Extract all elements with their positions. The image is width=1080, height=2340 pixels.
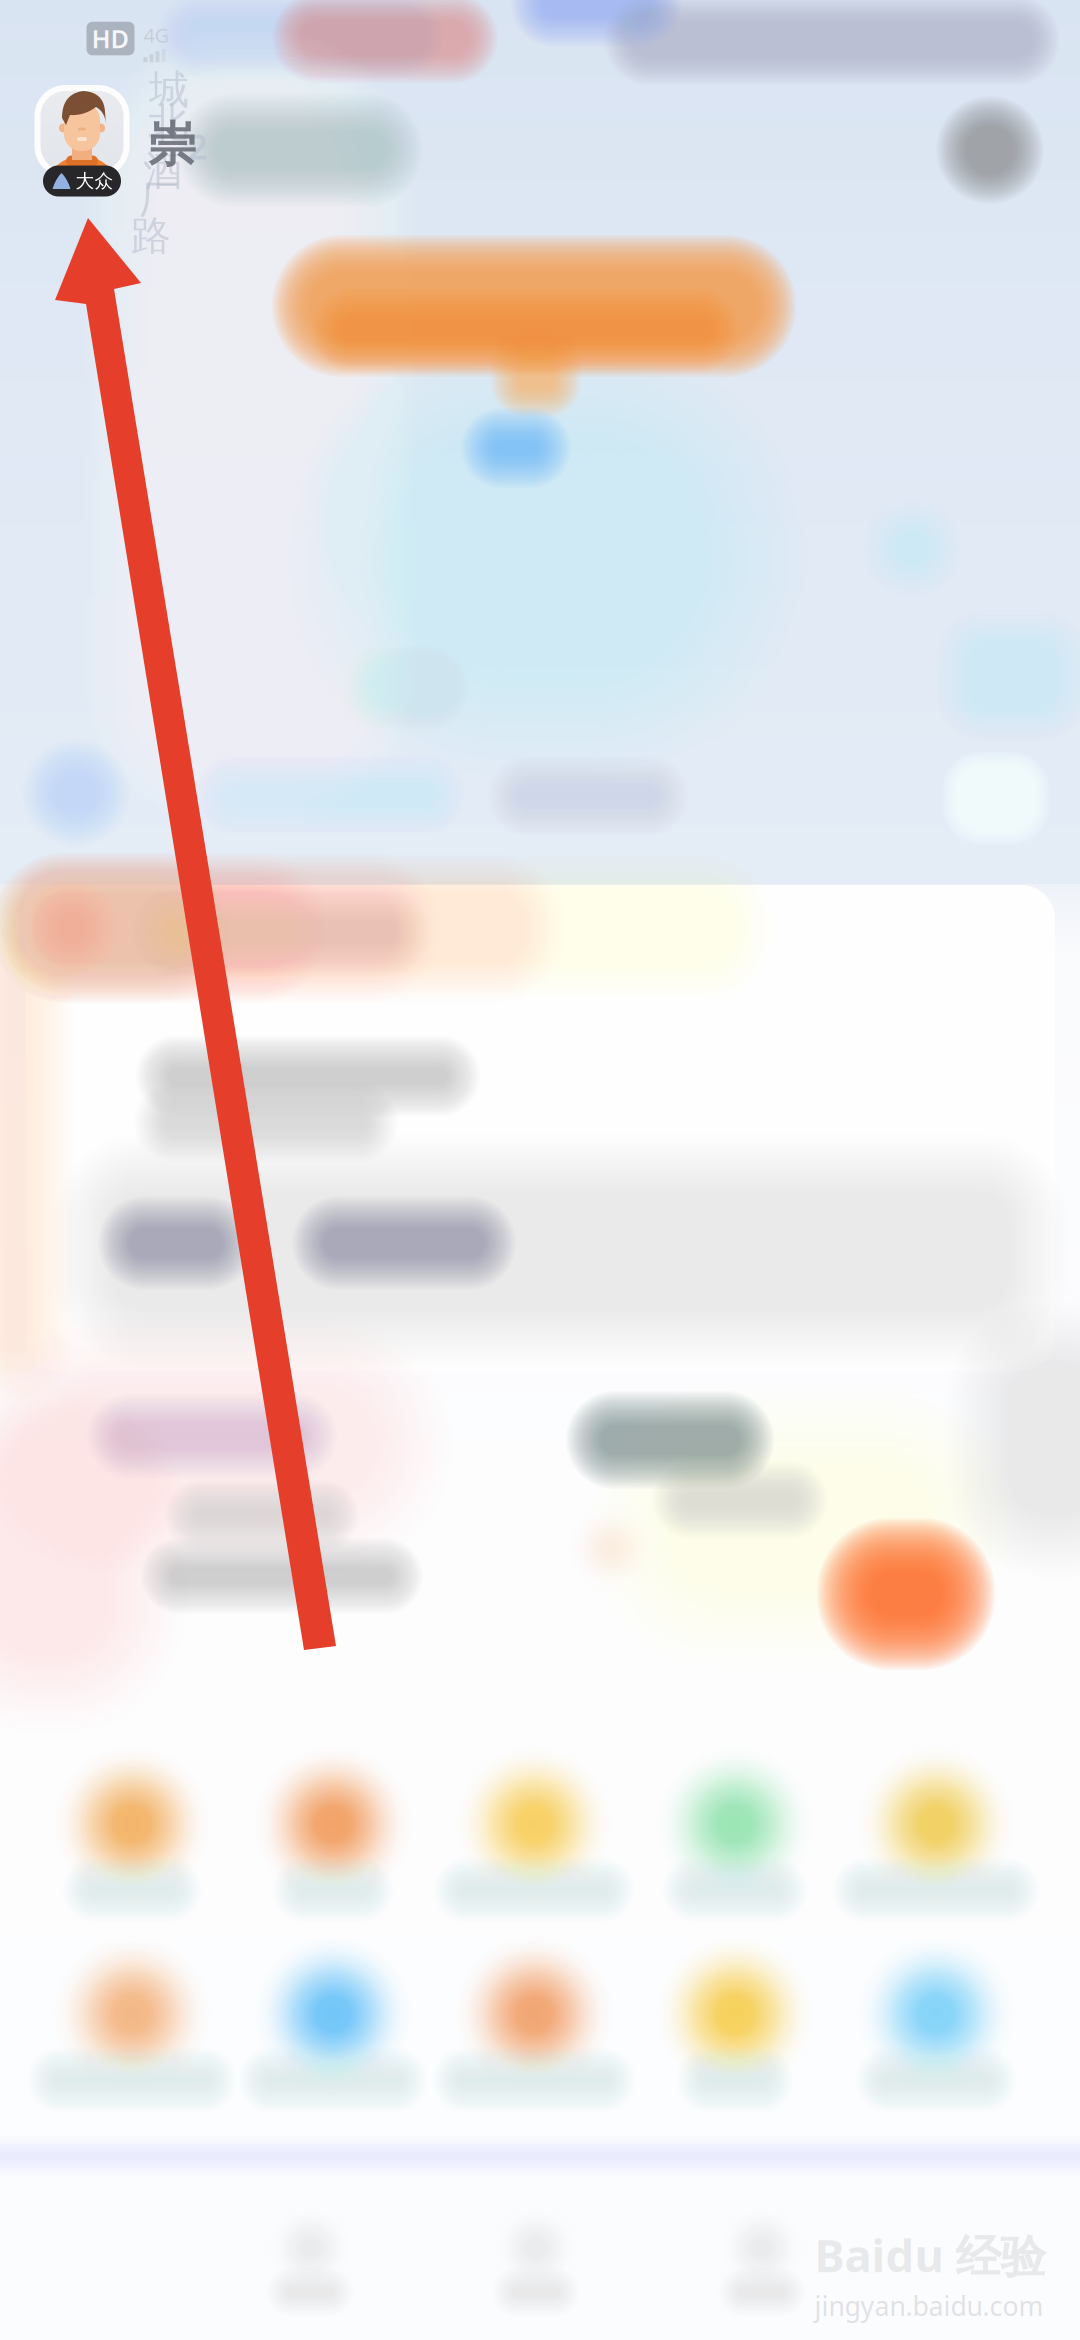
button[interactable]: Service shortcut	[32, 1761, 232, 1951]
staticText: HD	[91, 22, 129, 55]
button[interactable]: Service shortcut	[233, 1951, 433, 2141]
staticText: jingyan.baidu.com	[814, 2288, 1043, 2323]
button[interactable]: Tab	[426, 2191, 646, 2340]
staticText: 大众	[75, 169, 113, 192]
button[interactable]: Tab	[652, 2191, 872, 2340]
button[interactable]: Service shortcut	[434, 1951, 634, 2141]
button[interactable]: Driver profile	[27, 79, 137, 211]
staticText: 酒	[143, 146, 183, 195]
staticText: 2	[188, 123, 208, 169]
button[interactable]: Service shortcut	[434, 1761, 634, 1951]
staticText: 厂	[139, 175, 179, 224]
staticText: 崇	[148, 115, 196, 174]
button[interactable]: Tab	[200, 2191, 420, 2340]
button[interactable]: Service shortcut	[32, 1951, 232, 2141]
staticText: 城	[149, 65, 189, 114]
button[interactable]: Service shortcut	[233, 1761, 433, 1951]
staticText: 路	[131, 211, 171, 260]
button[interactable]: Service shortcut	[836, 1951, 1036, 2141]
staticText: 4G	[143, 22, 169, 48]
button[interactable]: Service shortcut	[635, 1761, 835, 1951]
button[interactable]: Service shortcut	[836, 1761, 1036, 1951]
staticText: 北	[148, 98, 188, 147]
staticText: Baidu 经验	[814, 2225, 1045, 2285]
button[interactable]: Service shortcut	[635, 1951, 835, 2141]
